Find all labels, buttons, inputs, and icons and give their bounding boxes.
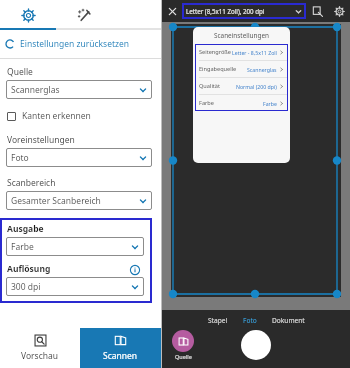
staticText: Eingabequelle <box>199 65 237 73</box>
staticText: Gesamter Scanbereich <box>11 195 101 207</box>
staticText: Foto <box>11 152 29 164</box>
button[interactable]: Einstellungen zurücksetzen <box>0 30 161 58</box>
staticText: Qualität <box>199 82 221 90</box>
staticText: Normal (200 dpi) <box>236 83 277 90</box>
staticText: Einstellungen zurücksetzen <box>20 38 130 50</box>
button[interactable]: Foto <box>241 315 259 326</box>
button[interactable]: Letter (8,5x11 Zoll), 200 dpi <box>182 3 306 19</box>
staticText: Quelle <box>175 353 192 360</box>
button[interactable]: Scannen <box>80 328 161 368</box>
staticText: Dokument <box>272 316 305 325</box>
staticText: Scannerglas <box>247 66 277 73</box>
staticText: Kanten erkennen <box>22 110 91 122</box>
button[interactable]: Einstellungen <box>0 0 56 30</box>
button[interactable]: Farbe <box>195 95 288 111</box>
button[interactable]: Schließen <box>162 0 182 22</box>
button[interactable]: Kanten erkennen <box>0 106 161 126</box>
staticText: Scannerglas <box>11 84 60 96</box>
button[interactable]: Scannerglas <box>6 80 152 99</box>
button[interactable]: Qualität <box>195 78 288 94</box>
button[interactable]: Farbe <box>6 237 144 256</box>
button[interactable]: Info <box>129 264 140 275</box>
button[interactable]: Zuschneiden <box>306 0 328 22</box>
staticText: Farbe <box>263 100 277 107</box>
button[interactable]: Stapel <box>206 315 230 326</box>
button[interactable]: Vorschau <box>0 328 80 368</box>
button[interactable]: Foto <box>6 148 152 167</box>
staticText: Vorschau <box>21 350 59 362</box>
staticText: Seitengröße <box>199 48 232 56</box>
staticText: Auflösung <box>7 263 51 275</box>
staticText: Farbe <box>199 99 214 107</box>
button[interactable]: Einstellungen <box>328 0 350 22</box>
button[interactable]: Gesamter Scanbereich <box>6 191 152 210</box>
button[interactable]: Dokument <box>270 315 307 326</box>
button[interactable]: Eingabequelle <box>195 61 288 77</box>
button[interactable]: Quelle <box>172 330 194 360</box>
staticText: Scaneinstellungen <box>214 31 269 40</box>
staticText: Farbe <box>11 241 34 253</box>
staticText: Voreinstellungen <box>7 134 75 146</box>
staticText: 300 dpi <box>11 281 41 293</box>
staticText: Foto <box>243 316 257 325</box>
button[interactable]: Aufnehmen <box>241 330 271 360</box>
staticText: Letter - 8,5x11 Zoll <box>232 49 277 56</box>
staticText: Scanbereich <box>7 177 56 189</box>
staticText: Stapel <box>208 316 228 325</box>
staticText: Scannen <box>103 350 138 362</box>
button[interactable]: Seitengröße <box>195 44 288 60</box>
button[interactable]: Verbessern <box>56 0 112 30</box>
staticText: Ausgabe <box>7 223 44 235</box>
staticText: Letter (8,5x11 Zoll), 200 dpi <box>186 7 265 15</box>
button[interactable]: 300 dpi <box>6 277 144 296</box>
staticText: Quelle <box>7 66 33 78</box>
